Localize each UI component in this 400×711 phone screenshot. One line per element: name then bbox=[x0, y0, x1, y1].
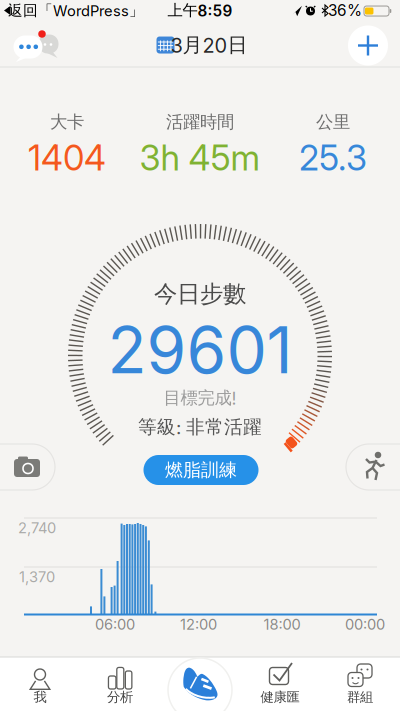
staticText: 3h 45m bbox=[139, 137, 260, 179]
staticText: 29601 bbox=[107, 311, 292, 389]
staticText: 3月20日 bbox=[170, 32, 247, 58]
staticText: 活躍時間 bbox=[166, 111, 234, 133]
staticText: 2,740 bbox=[18, 519, 56, 537]
staticText: 上午8:59 bbox=[167, 1, 232, 20]
staticText: 06:00 bbox=[95, 616, 135, 633]
button[interactable]: Messages bbox=[11, 27, 63, 63]
staticText: 公里 bbox=[316, 111, 350, 133]
staticText: 12:00 bbox=[180, 616, 217, 633]
staticText: 36% bbox=[328, 1, 362, 20]
staticText: 等級: 非常活躍 bbox=[138, 415, 262, 439]
staticText: 目標完成! bbox=[163, 387, 236, 409]
button[interactable]: 健康匯 bbox=[240, 657, 320, 711]
staticText: 1,370 bbox=[19, 568, 55, 586]
staticText: 00:00 bbox=[345, 616, 385, 633]
button[interactable]: Start workout bbox=[346, 444, 400, 490]
button[interactable]: Select date bbox=[153, 33, 245, 57]
staticText: 分析 bbox=[107, 689, 133, 705]
staticText: 燃脂訓練 bbox=[165, 459, 237, 481]
staticText: 返回「WordPress」 bbox=[8, 1, 144, 20]
button[interactable]: 分析 bbox=[80, 657, 160, 711]
button[interactable]: 群組 bbox=[320, 657, 400, 711]
staticText: 1404 bbox=[28, 137, 106, 179]
staticText: 群組 bbox=[347, 689, 373, 705]
staticText: 25.3 bbox=[299, 137, 367, 179]
staticText: 我 bbox=[33, 689, 46, 705]
staticText: 18:00 bbox=[263, 616, 300, 633]
button[interactable]: Camera bbox=[0, 444, 55, 490]
staticText: 大卡 bbox=[50, 111, 84, 133]
button[interactable]: 燃脂訓練 bbox=[143, 455, 258, 485]
staticText: 健康匯 bbox=[260, 689, 299, 705]
button[interactable]: 我 bbox=[0, 657, 80, 711]
button[interactable]: Add bbox=[346, 23, 390, 67]
staticText: 今日步數 bbox=[154, 279, 246, 309]
button[interactable]: 步數 bbox=[160, 657, 240, 711]
